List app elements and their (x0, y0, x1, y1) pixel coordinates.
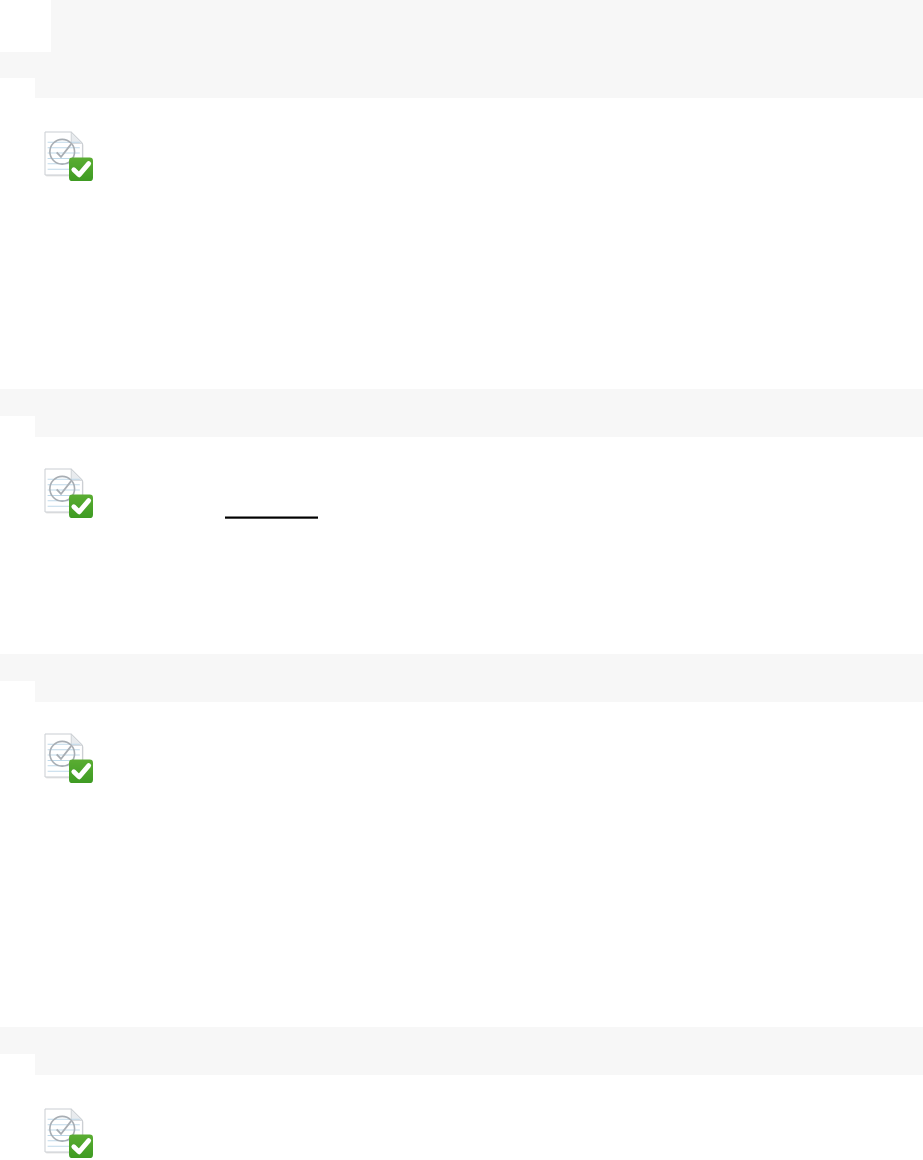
button[interactable]: Completed document (45, 131, 93, 181)
button[interactable]: Completed document (45, 733, 93, 783)
button[interactable]: Completed document (45, 468, 93, 518)
button[interactable]: Completed document (45, 1108, 93, 1158)
